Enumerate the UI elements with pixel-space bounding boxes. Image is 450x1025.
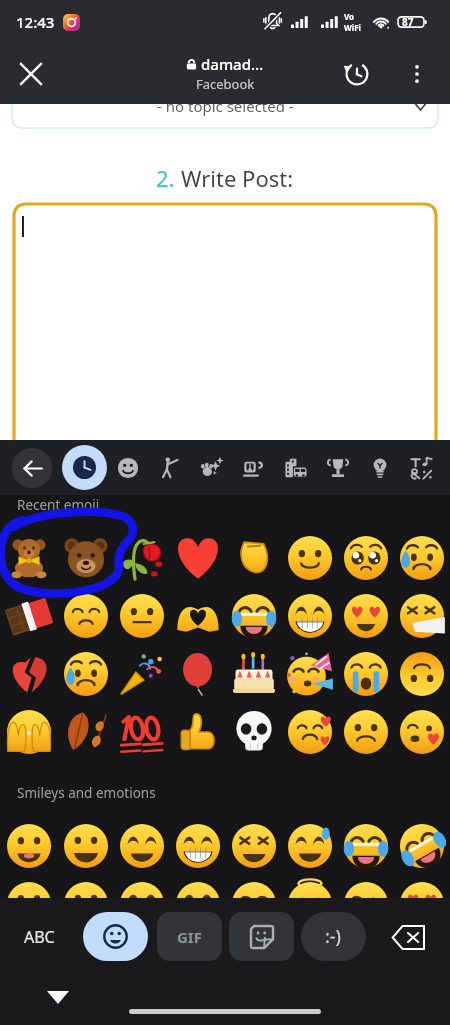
staticText: 2. (156, 163, 175, 193)
button[interactable]: smile-eyes (114, 875, 170, 932)
button[interactable]: sweat-smile (282, 817, 338, 875)
button[interactable]: ABC (10, 913, 68, 961)
button[interactable]: upside (394, 645, 450, 703)
button[interactable]: squint (226, 817, 282, 875)
button[interactable]: Food (233, 440, 275, 495)
button[interactable]: partying (282, 645, 338, 703)
button[interactable]: bear-face (57, 529, 114, 587)
button[interactable]: Travel (275, 440, 317, 495)
button[interactable]: bear-teddy (0, 529, 57, 587)
button[interactable]: relieved (57, 587, 114, 645)
staticText: Facebook (196, 75, 255, 93)
button[interactable]: pinch (226, 529, 282, 587)
button[interactable] (14, 204, 436, 454)
button[interactable]: Symbols (401, 440, 443, 495)
button[interactable]: cake (226, 645, 282, 703)
button[interactable]: heart-eyes (338, 587, 394, 645)
button[interactable]: joy (226, 587, 282, 645)
button[interactable]: rofl (394, 817, 450, 875)
button[interactable]: thumbsup (170, 703, 226, 761)
staticText: WiFi (344, 22, 361, 33)
button[interactable]: leaves (57, 703, 114, 761)
button[interactable]: Recent (62, 445, 107, 490)
staticText: :-) (325, 924, 342, 949)
staticText: Recent emoji (17, 496, 100, 514)
button[interactable]: sad-tear (394, 529, 450, 587)
button[interactable]: grin2 (57, 875, 114, 932)
button[interactable]: sob (338, 645, 394, 703)
button[interactable]: History (333, 50, 381, 98)
button[interactable]: Back (12, 448, 52, 488)
button[interactable]: halo (282, 875, 338, 932)
button[interactable]: kiss-heart (338, 875, 394, 932)
button[interactable]: - no topic selected - (12, 80, 438, 128)
button[interactable]: pleading (338, 529, 394, 587)
staticText: Smileys and emotions (17, 784, 156, 802)
button[interactable]: :-) (301, 912, 366, 961)
button[interactable]: smiling-hearts (282, 703, 338, 761)
button[interactable]: frown (338, 703, 394, 761)
button[interactable]: Objects (359, 440, 401, 495)
button[interactable]: kiss-heart (394, 703, 450, 761)
staticText: GIF (177, 927, 202, 947)
button[interactable]: hundred (114, 703, 170, 761)
staticText: 12:43 (16, 12, 55, 32)
button[interactable]: Backspace (383, 912, 433, 962)
button[interactable]: Animals (191, 440, 233, 495)
button[interactable]: joy (338, 817, 394, 875)
button[interactable]: heart (170, 529, 226, 587)
staticText: - no topic selected - (157, 96, 294, 116)
button[interactable]: smile-eyes (114, 817, 170, 875)
button[interactable]: GIF (157, 912, 222, 961)
button[interactable]: party-popper (114, 645, 170, 703)
button[interactable]: Activities (317, 440, 359, 495)
staticText: ABC (24, 926, 55, 948)
button[interactable]: grin1 (0, 817, 57, 875)
button[interactable]: skull (226, 703, 282, 761)
button[interactable]: balloon (170, 645, 226, 703)
button[interactable]: grin1 (0, 875, 57, 932)
staticText: 87 (402, 15, 414, 29)
button[interactable]: slight-smile (282, 529, 338, 587)
button[interactable]: peek (0, 703, 57, 761)
button[interactable]: cry (57, 645, 114, 703)
button[interactable]: grin-teeth (170, 817, 226, 875)
button[interactable]: relieved (226, 875, 282, 932)
button[interactable]: broken-heart (0, 645, 57, 703)
button[interactable]: Hide keyboard (44, 983, 72, 1011)
button[interactable]: neutral (114, 587, 170, 645)
button[interactable]: People (149, 440, 191, 495)
button[interactable]: grin-teeth (170, 875, 226, 932)
button[interactable]: Smileys (107, 440, 149, 495)
button[interactable]: Stickers (229, 912, 294, 961)
button[interactable]: chocolate (0, 587, 57, 645)
button[interactable]: heart-eyes (394, 875, 450, 932)
button[interactable]: More options (393, 50, 441, 98)
button[interactable]: Emoji (83, 912, 148, 961)
button[interactable]: grin-teeth (282, 587, 338, 645)
staticText: Vo (344, 11, 355, 22)
staticText: Write Post: (181, 163, 294, 193)
button[interactable]: sneeze (394, 587, 450, 645)
button[interactable]: grin2 (57, 817, 114, 875)
button[interactable]: Close (7, 50, 55, 98)
button[interactable]: heart-hands (170, 587, 226, 645)
staticText: damad… (201, 54, 264, 74)
button[interactable]: rose (114, 529, 170, 587)
